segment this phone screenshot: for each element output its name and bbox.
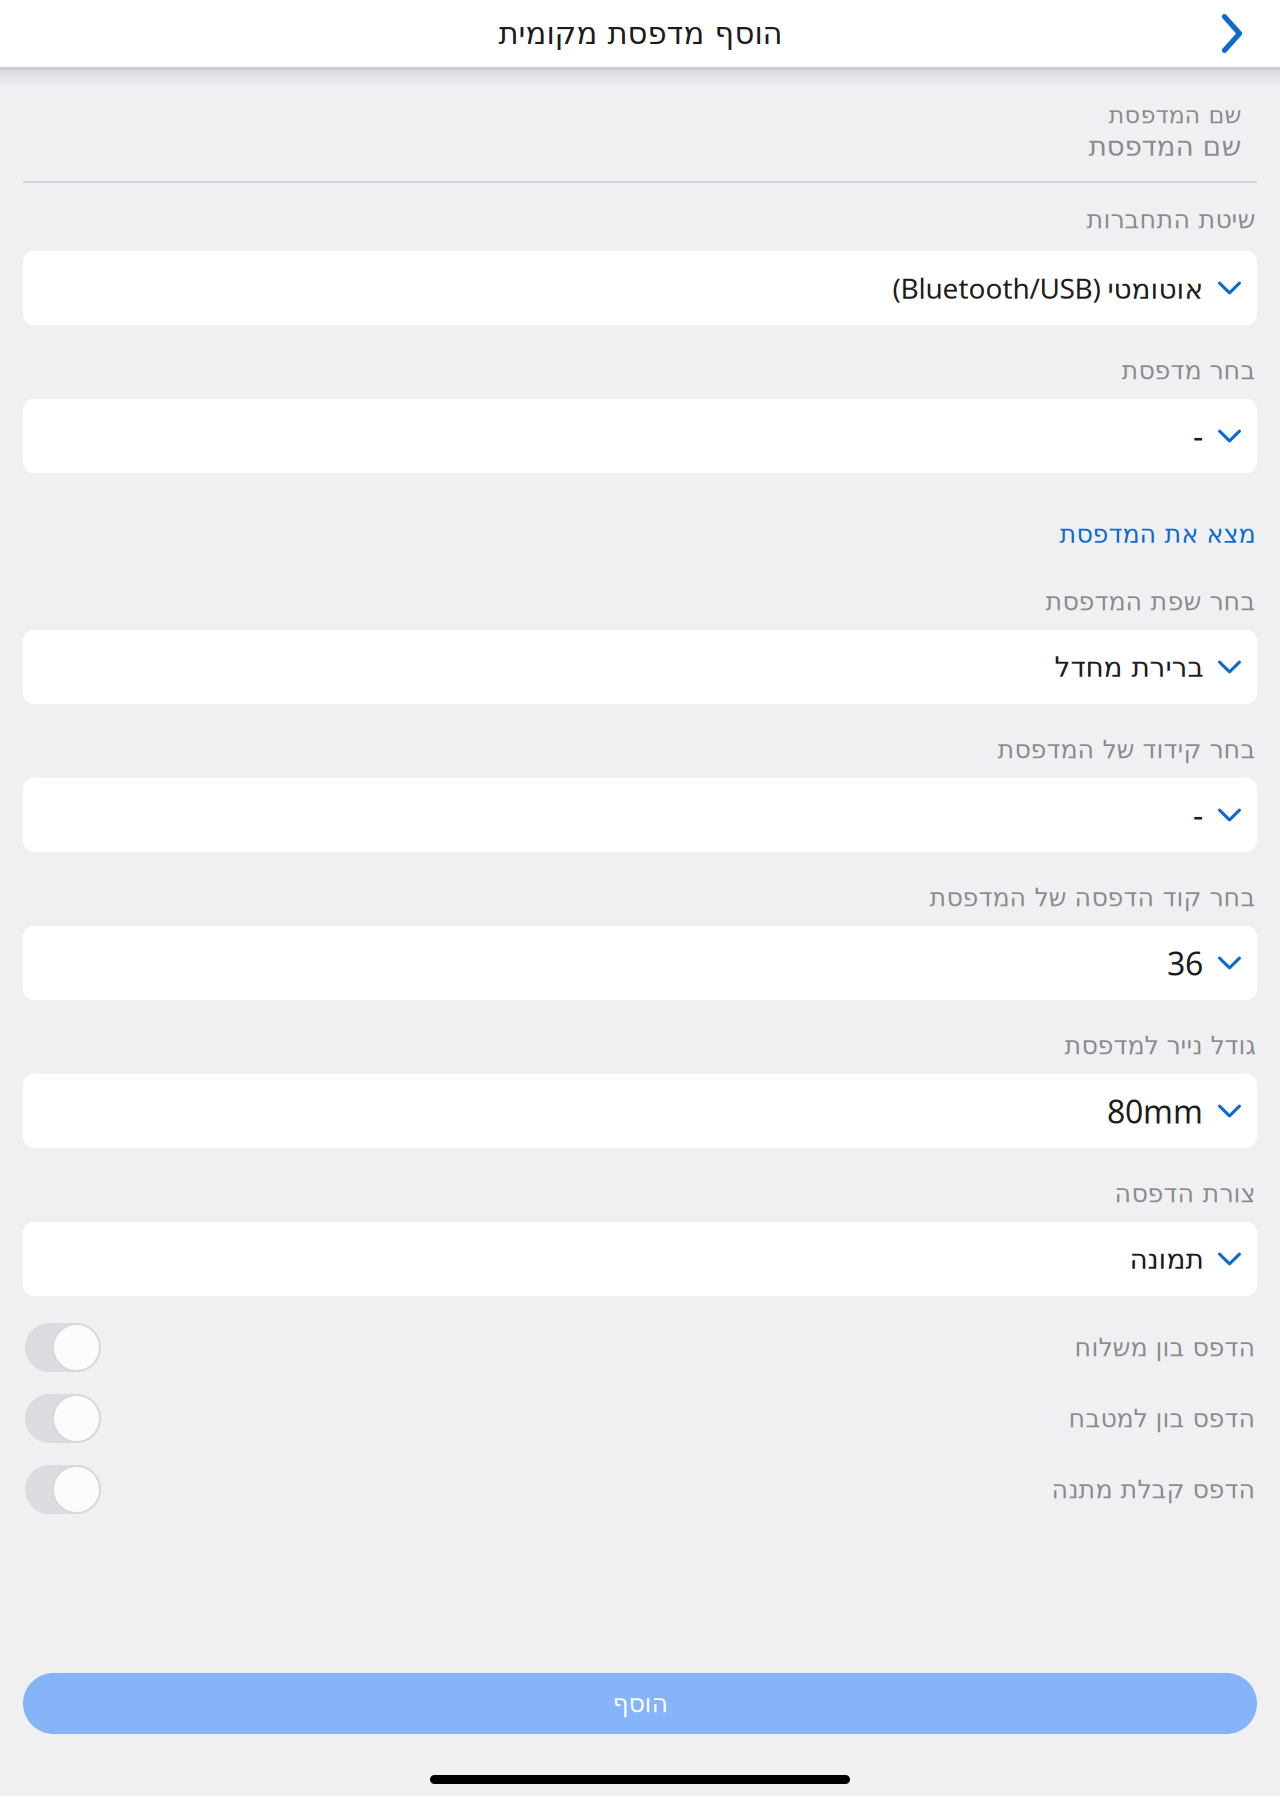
button[interactable]: - [0,778,1280,852]
button[interactable]: הדפס בון משלוח [0,1312,1280,1383]
staticText: שם המדפסת [1108,101,1241,129]
staticText: בחר שפת המדפסת [1045,587,1255,616]
staticText: בחר מדפסת [1121,356,1255,385]
button[interactable]: ברירת מחדל [0,630,1280,704]
button[interactable]: הדפס קבלת מתנה [0,1454,1280,1525]
button[interactable]: שם המדפסת [0,103,1280,183]
staticText: הוסף [612,1689,668,1718]
button[interactable]: תמונה [0,1222,1280,1296]
staticText: 80mm [1107,1090,1203,1132]
button[interactable]: מצא את המדפסת [0,518,1280,550]
staticText: שיטת התחברות [1086,205,1255,234]
staticText: ברירת מחדל [1054,651,1203,683]
staticText: - [1193,415,1203,457]
button[interactable]: הוסף [0,1673,1280,1734]
staticText: תמונה [1129,1243,1203,1275]
staticText: צורת הדפסה [1114,1179,1255,1208]
button[interactable]: אוטומטי (Bluetooth/USB) [0,251,1280,325]
staticText: אוטומטי (Bluetooth/USB) [892,269,1203,307]
staticText: הדפס קבלת מתנה [1051,1475,1255,1504]
button[interactable]: הדפס בון למטבח [0,1383,1280,1454]
staticText: 36 [1167,942,1203,984]
staticText: הדפס בון למטבח [1068,1404,1255,1433]
staticText: הוסף מדפסת מקומית [498,16,782,51]
button[interactable]: - [0,399,1280,473]
staticText: הדפס בון משלוח [1074,1333,1255,1362]
staticText: מצא את המדפסת [1059,520,1255,548]
staticText: בחר קידוד של המדפסת [997,735,1255,764]
button[interactable]: 80mm [0,1074,1280,1148]
staticText: - [1193,794,1203,836]
button[interactable]: 36 [0,926,1280,1000]
staticText: שם המדפסת [1088,130,1241,162]
button[interactable]: Back [1204,1,1260,65]
staticText: בחר קוד הדפסה של המדפסת [929,883,1255,912]
staticText: גודל נייר למדפסת [1064,1031,1255,1060]
